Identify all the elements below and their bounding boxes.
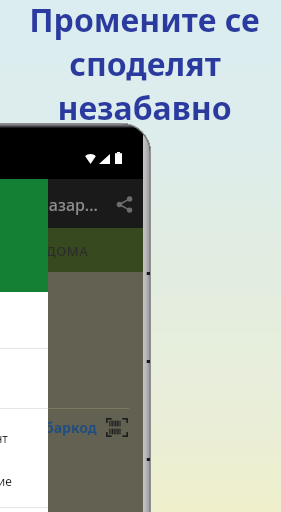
- staticText: Промените се: [29, 0, 260, 42]
- staticText: ДОМА: [46, 242, 89, 260]
- button[interactable]: Share: [111, 191, 137, 217]
- button[interactable]: баркод: [45, 418, 97, 437]
- staticText: баркод: [45, 418, 97, 437]
- button[interactable]: ДОМА: [30, 229, 104, 272]
- staticText: незабавно: [57, 86, 232, 130]
- button[interactable]: Известие: [0, 459, 48, 502]
- button[interactable]: Моят акаунт: [0, 416, 48, 459]
- staticText: Моят акаунт: [0, 430, 8, 446]
- staticText: Известие: [0, 473, 12, 489]
- button[interactable]: Scan barcode: [106, 418, 128, 437]
- staticText: Пазар...: [37, 194, 98, 216]
- staticText: споделят: [69, 42, 221, 86]
